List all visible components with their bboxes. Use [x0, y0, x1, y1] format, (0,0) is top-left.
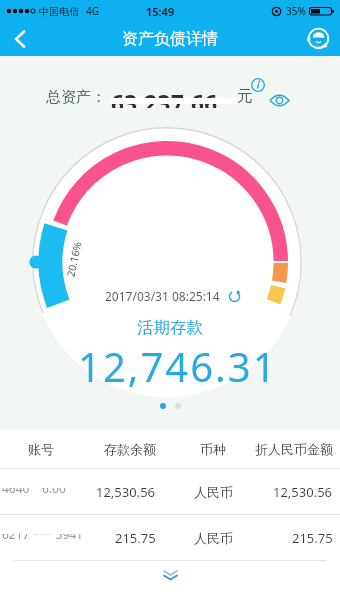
staticText: 人民币 [194, 530, 233, 546]
staticText: 4640 6.00 [2, 488, 66, 496]
staticText: 2017/03/31 08:25:14 [105, 288, 220, 304]
staticText: 元 [237, 86, 253, 106]
button[interactable] [0, 22, 40, 56]
staticText: 中国电信 [39, 5, 79, 18]
staticText: 12,746.31 [78, 339, 278, 393]
staticText: 活期存款 [137, 317, 203, 338]
staticText: 12,530.56 [96, 483, 156, 501]
button[interactable] [226, 288, 242, 304]
staticText: 63,237.66 [111, 88, 218, 108]
button[interactable]: 6217 *** 5941 [0, 515, 340, 560]
staticText: 20.16% [63, 240, 85, 278]
staticText: 币种 [200, 441, 226, 457]
staticText: 存款余额 [104, 441, 156, 457]
staticText: 资产负债详情 [122, 29, 218, 49]
staticText: 4G [86, 4, 99, 18]
staticText: 35% [286, 4, 306, 18]
staticText: 人民币 [194, 484, 233, 500]
staticText: 12,530.56 [273, 483, 333, 501]
button[interactable]: 4640 6.00 [0, 469, 340, 514]
staticText: 总资产： [46, 88, 106, 107]
button[interactable] [155, 565, 185, 585]
button[interactable] [248, 75, 268, 95]
button[interactable] [302, 22, 334, 56]
button[interactable] [264, 89, 294, 111]
staticText: 215.75 [292, 529, 333, 547]
staticText: 折人民币金额 [255, 441, 333, 457]
staticText: 15:49 [146, 4, 175, 19]
staticText: 账号 [28, 441, 54, 457]
staticText: 6217 *** 5941 [2, 534, 83, 542]
staticText: 215.75 [115, 529, 156, 547]
